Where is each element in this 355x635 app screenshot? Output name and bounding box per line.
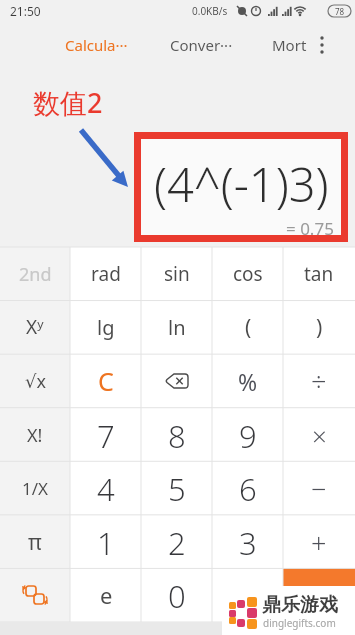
staticText: 2nd bbox=[19, 262, 52, 287]
button[interactable]: e bbox=[71, 575, 141, 615]
button[interactable]: 7 bbox=[71, 415, 141, 455]
staticText: π bbox=[28, 528, 42, 557]
button[interactable]: = bbox=[283, 568, 355, 622]
button[interactable]: × bbox=[284, 415, 354, 455]
button[interactable] bbox=[316, 35, 328, 55]
staticText: sin bbox=[164, 261, 190, 287]
staticText: Conver··· bbox=[170, 35, 233, 55]
staticText: + bbox=[311, 524, 327, 561]
button[interactable]: lg bbox=[71, 307, 141, 347]
staticText: Mort bbox=[272, 35, 307, 55]
button[interactable]: sin bbox=[142, 254, 212, 294]
staticText: 0 bbox=[168, 575, 186, 615]
staticText: = bbox=[311, 577, 327, 614]
button[interactable]: Mort bbox=[272, 22, 307, 68]
button[interactable] bbox=[0, 575, 70, 615]
button[interactable]: cos bbox=[213, 254, 283, 294]
staticText: 3 bbox=[239, 522, 257, 562]
staticText: e bbox=[100, 580, 113, 610]
staticText: ln bbox=[168, 314, 186, 341]
button[interactable]: Calcula··· bbox=[65, 22, 128, 68]
button[interactable]: √x bbox=[0, 361, 70, 401]
button[interactable]: 2nd bbox=[0, 254, 70, 294]
button[interactable]: ÷ bbox=[284, 361, 354, 401]
staticText: cos bbox=[233, 261, 263, 287]
button[interactable]: 0 bbox=[142, 575, 212, 615]
button[interactable]: 6 bbox=[213, 468, 283, 508]
button[interactable]: 3 bbox=[213, 522, 283, 562]
button[interactable]: tan bbox=[284, 254, 354, 294]
button[interactable]: X! bbox=[0, 415, 70, 455]
button[interactable]: % bbox=[213, 361, 283, 401]
staticText: 数值2 bbox=[33, 84, 103, 121]
staticText: dinglegifts.com bbox=[263, 616, 336, 630]
staticText: X! bbox=[27, 423, 43, 448]
button[interactable]: + bbox=[284, 522, 354, 562]
staticText: = 0.75 bbox=[286, 217, 334, 240]
staticText: 78 bbox=[335, 6, 345, 17]
staticText: − bbox=[311, 470, 327, 507]
staticText: ( bbox=[245, 313, 252, 342]
staticText: √x bbox=[25, 369, 46, 394]
staticText: 鼎乐游戏 bbox=[262, 593, 338, 617]
staticText: 7 bbox=[97, 415, 115, 455]
button[interactable]: 5 bbox=[142, 468, 212, 508]
button[interactable]: Xʸ bbox=[0, 307, 70, 347]
staticText: ) bbox=[316, 313, 323, 342]
staticText: lg bbox=[97, 314, 115, 341]
button[interactable] bbox=[142, 361, 212, 401]
staticText: 1/X bbox=[22, 477, 49, 500]
button[interactable]: Conver··· bbox=[170, 22, 233, 68]
staticText: 8 bbox=[168, 415, 186, 455]
button[interactable]: 4 bbox=[71, 468, 141, 508]
staticText: . bbox=[244, 575, 252, 615]
staticText: 0.0KB/s bbox=[192, 4, 228, 18]
button[interactable]: 8 bbox=[142, 415, 212, 455]
button[interactable]: ( bbox=[213, 307, 283, 347]
staticText: 9 bbox=[239, 415, 257, 455]
button[interactable]: C bbox=[71, 361, 141, 401]
staticText: ÷ bbox=[311, 363, 327, 400]
button[interactable]: . bbox=[213, 575, 283, 615]
staticText: % bbox=[238, 366, 258, 397]
button[interactable]: 1 bbox=[71, 522, 141, 562]
staticText: Xʸ bbox=[26, 314, 44, 340]
staticText: 6 bbox=[239, 468, 257, 508]
button[interactable]: ) bbox=[284, 307, 354, 347]
staticText: Calcula··· bbox=[65, 35, 128, 55]
staticText: tan bbox=[304, 261, 334, 287]
staticText: rad bbox=[91, 261, 121, 287]
staticText: (4^(-1)3) bbox=[154, 152, 329, 214]
staticText: C bbox=[98, 364, 114, 398]
staticText: 5 bbox=[168, 468, 186, 508]
button[interactable]: − bbox=[284, 468, 354, 508]
staticText: × bbox=[312, 418, 327, 453]
button[interactable]: 9 bbox=[213, 415, 283, 455]
button[interactable]: 2 bbox=[142, 522, 212, 562]
button[interactable]: ln bbox=[142, 307, 212, 347]
staticText: 4 bbox=[97, 468, 115, 508]
button[interactable]: rad bbox=[71, 254, 141, 294]
staticText: 1 bbox=[97, 522, 115, 562]
staticText: 2 bbox=[168, 522, 186, 562]
staticText: 21:50 bbox=[10, 3, 41, 19]
button[interactable]: 1/X bbox=[0, 468, 70, 508]
button[interactable]: π bbox=[0, 522, 70, 562]
